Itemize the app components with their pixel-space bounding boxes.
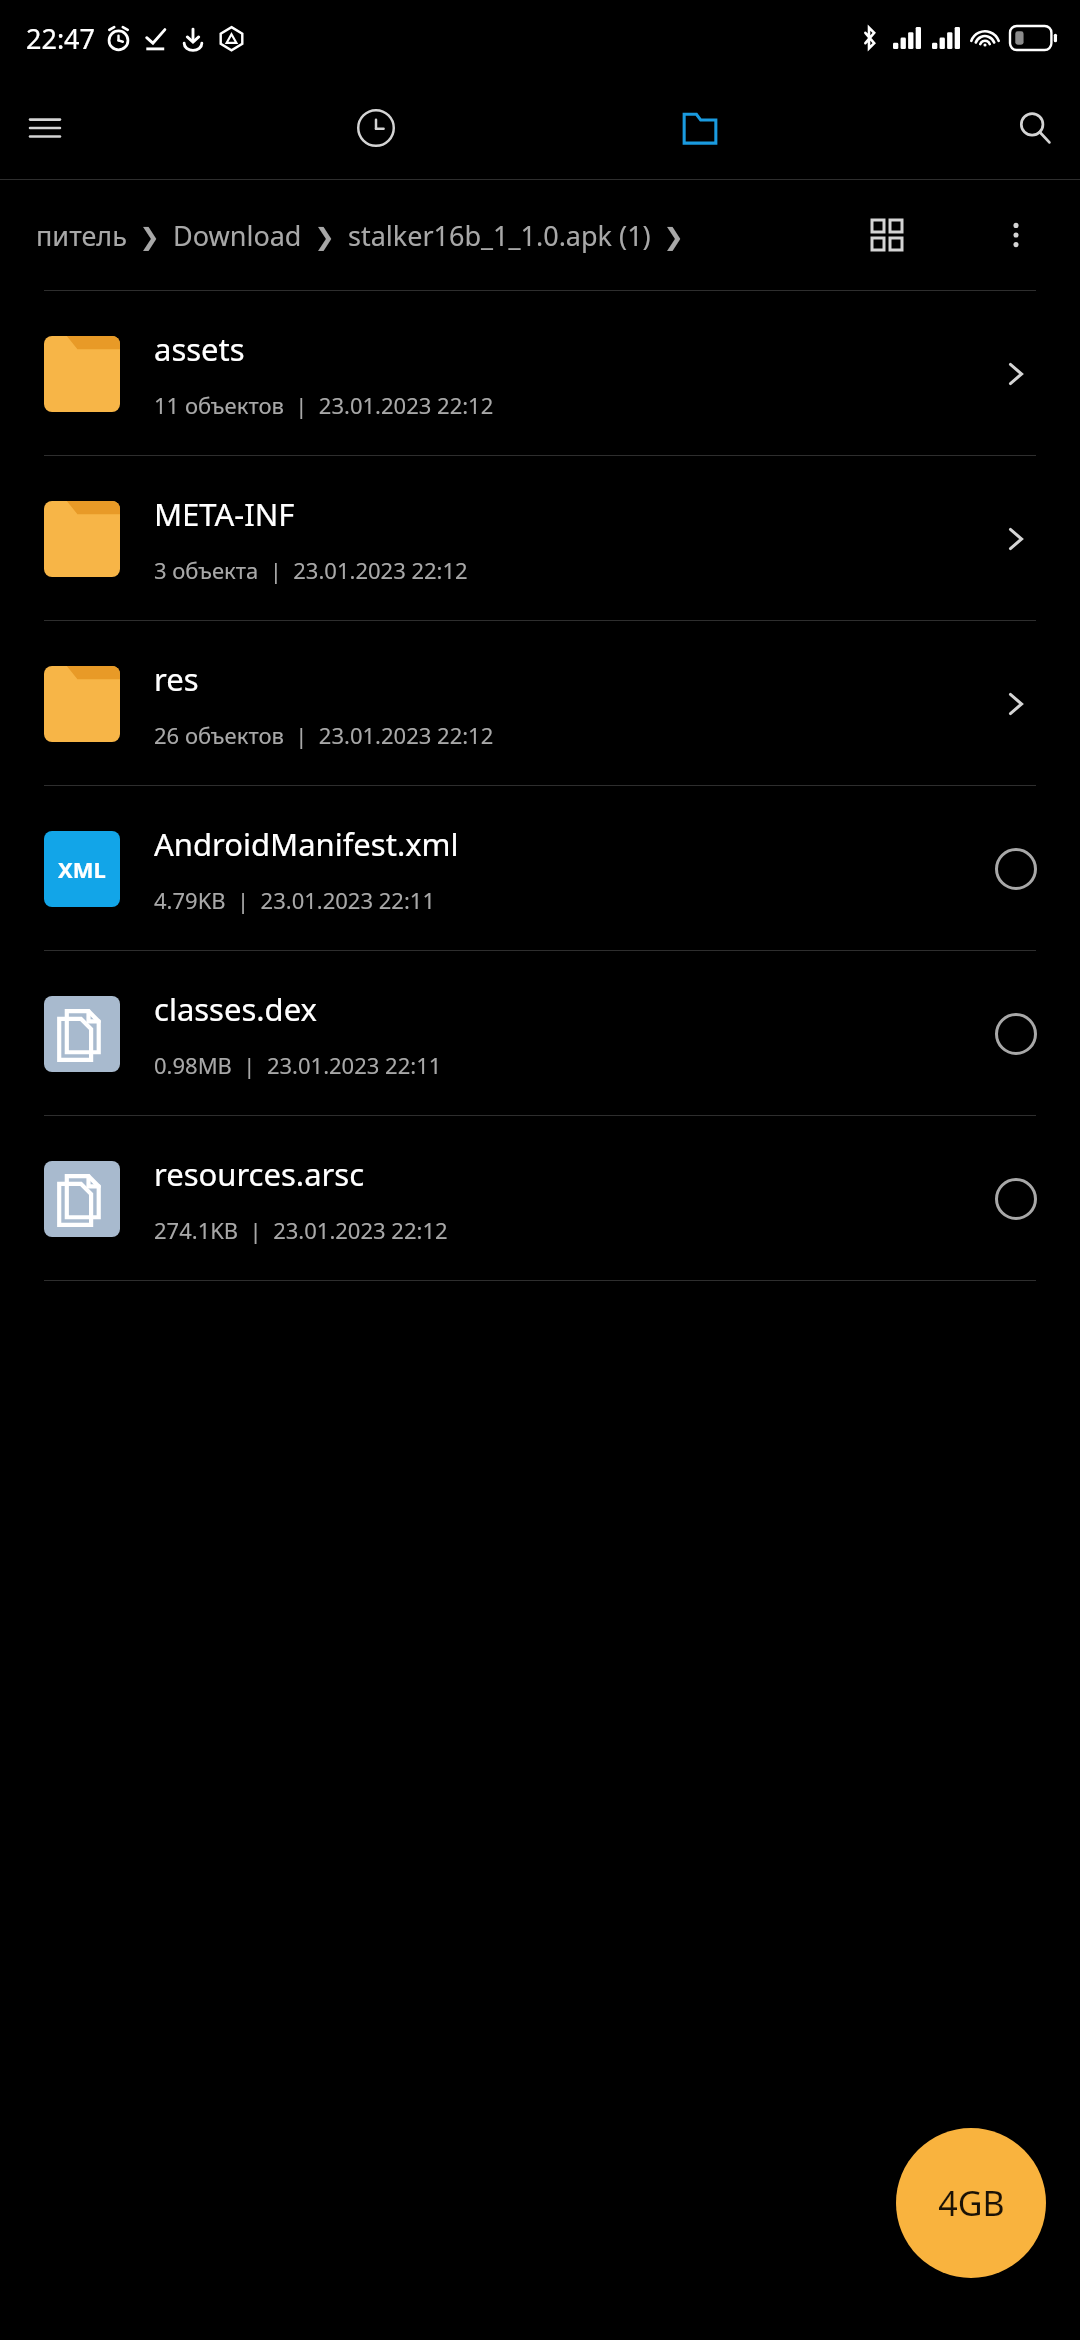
staticText: 274.1KB | 23.01.2023 22:12 <box>154 1215 448 1245</box>
button[interactable]: Search <box>1004 97 1066 159</box>
button[interactable]: classes.dex <box>0 951 1080 1116</box>
button[interactable]: META-INF <box>0 456 1080 621</box>
staticText: 0.98MB | 23.01.2023 22:11 <box>154 1050 442 1080</box>
staticText: ❯ <box>651 219 684 252</box>
button[interactable]: Storage <box>669 97 731 159</box>
button[interactable]: resources.arsc <box>0 1116 1080 1281</box>
staticText: XML <box>58 854 106 884</box>
button[interactable]: res <box>0 621 1080 786</box>
button[interactable]: XML <box>0 786 1080 951</box>
button[interactable]: Download <box>173 217 302 254</box>
staticText: stalker16b_1_1.0.apk (1) <box>348 217 651 254</box>
staticText: 4GB <box>938 2180 1005 2226</box>
staticText: assets <box>154 328 245 370</box>
staticText: AndroidManifest.xml <box>154 823 459 865</box>
staticText: 4.79KB | 23.01.2023 22:11 <box>154 885 435 915</box>
staticText: Download <box>173 217 302 254</box>
staticText: ❯ <box>127 219 173 252</box>
button[interactable]: питель <box>36 217 127 254</box>
staticText: 3 объекта | 23.01.2023 22:12 <box>154 555 468 585</box>
staticText: resources.arsc <box>154 1153 365 1195</box>
button[interactable]: stalker16b_1_1.0.apk (1) <box>348 217 651 254</box>
staticText: 11 объектов | 23.01.2023 22:12 <box>154 390 494 420</box>
button[interactable]: Grid view <box>855 203 919 267</box>
button[interactable]: assets <box>0 291 1080 456</box>
button[interactable]: More options <box>984 203 1048 267</box>
button[interactable]: Menu <box>14 97 76 159</box>
staticText: 20 <box>1030 27 1050 50</box>
staticText: classes.dex <box>154 988 317 1030</box>
button[interactable]: 4GB <box>896 2128 1046 2278</box>
staticText: питель <box>36 217 127 254</box>
staticText: 22:47 <box>26 20 96 57</box>
staticText: META-INF <box>154 493 295 535</box>
staticText: res <box>154 658 199 700</box>
staticText: ❯ <box>302 219 348 252</box>
button[interactable]: Recent <box>345 97 407 159</box>
staticText: 26 объектов | 23.01.2023 22:12 <box>154 720 494 750</box>
